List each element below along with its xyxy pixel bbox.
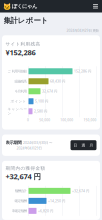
staticText: ぽくにゃん: [12, 3, 37, 10]
staticText: +6,820 円: [38, 208, 53, 213]
button[interactable]: 月: [87, 141, 95, 149]
staticText: ご利用可能額: [7, 69, 26, 73]
staticText: ¥152,286: [5, 47, 35, 57]
staticText: ポイント: [10, 99, 26, 103]
button[interactable]: 週: [79, 141, 87, 149]
staticText: キャンペーン: [7, 107, 26, 115]
staticText: 150,000: [83, 118, 96, 122]
staticText: +32,674 円: [5, 171, 40, 181]
staticText: 確定報酬: [14, 199, 26, 203]
staticText: サイト利用残高: [5, 41, 40, 47]
staticText: 表示期間: [5, 140, 21, 145]
staticText: 2024年03月30日 〜: [23, 140, 52, 145]
staticText: 期間内の獲得金額: [5, 165, 45, 171]
staticText: 月: [89, 143, 93, 147]
staticText: +32,674 円: [72, 188, 89, 193]
staticText: 2,580 円: [34, 109, 47, 114]
staticText: 繰越残高: [14, 79, 26, 83]
staticText: 0: [27, 118, 29, 122]
staticText: 2024年04月29日: [16, 146, 41, 150]
staticText: 50,000: [39, 118, 50, 122]
staticText: 5,100 円: [35, 99, 48, 104]
staticText: 今月利用: [14, 89, 26, 93]
staticText: 2024年04月29日 更新: [66, 28, 98, 33]
staticText: 集計レポート: [3, 16, 48, 25]
staticText: 32,674 円: [42, 89, 57, 94]
staticText: 🐱: [3, 2, 11, 10]
staticText: 68,430 円: [50, 79, 65, 84]
staticText: 100,000: [60, 118, 73, 122]
staticText: +14,250 円: [48, 198, 65, 203]
staticText: 報酬合計: [14, 189, 26, 193]
staticText: 未確定報酬: [11, 209, 26, 213]
button[interactable]: 日: [71, 141, 79, 149]
staticText: 週: [81, 143, 85, 147]
button[interactable]: Menu: [91, 2, 100, 10]
staticText: 日: [73, 143, 77, 147]
staticText: 152,286 円: [74, 69, 91, 74]
